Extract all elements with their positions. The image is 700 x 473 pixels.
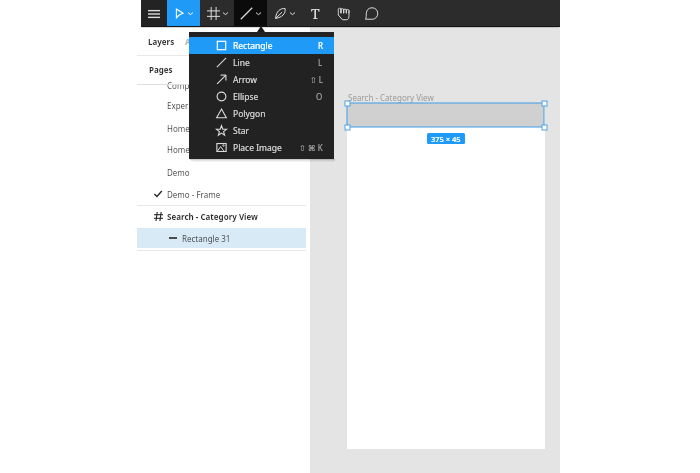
button[interactable]: Hand tool (329, 0, 357, 27)
button[interactable]: Frame tool (200, 0, 234, 27)
staticText: Home (167, 144, 190, 155)
staticText: Star (233, 125, 250, 137)
button[interactable]: Home (137, 118, 306, 138)
button[interactable]: Layers (137, 29, 186, 54)
button[interactable]: Place Image (189, 139, 334, 156)
staticText: Exper (167, 100, 189, 111)
staticText: Rectangle 31 (182, 233, 231, 244)
staticText: Layers (148, 36, 175, 47)
button[interactable]: Menu (141, 0, 167, 27)
button[interactable]: Search - Category View (137, 206, 306, 226)
staticText: Demo - Frame (167, 189, 221, 200)
staticText: Polygon (233, 108, 266, 120)
staticText: O (316, 91, 323, 102)
button[interactable]: Pages (137, 57, 184, 82)
button[interactable]: Move tool (167, 0, 200, 27)
button[interactable]: Polygon (189, 105, 334, 122)
staticText: Arrow (233, 74, 257, 86)
staticText: Demo (167, 167, 190, 178)
staticText: L (318, 57, 323, 68)
button[interactable]: Home (137, 139, 306, 159)
staticText: Search - Category View (167, 211, 258, 222)
staticText: 375 × 45 (431, 134, 461, 144)
button[interactable]: Rectangle (189, 37, 334, 54)
staticText: Comp (167, 80, 190, 91)
button[interactable]: Line (189, 54, 334, 71)
button[interactable]: Text tool (301, 0, 329, 27)
staticText: Line (233, 57, 250, 69)
button[interactable]: Star (189, 122, 334, 139)
staticText: T (311, 4, 320, 23)
staticText: Pages (149, 64, 173, 75)
staticText: Search - Category View (348, 92, 434, 103)
button[interactable]: Shape tool (234, 0, 267, 27)
staticText: ⇧ ⌘ K (299, 142, 323, 153)
staticText: Ellipse (233, 91, 259, 103)
button[interactable]: Comment tool (357, 0, 385, 27)
staticText: Rectangle (233, 40, 273, 52)
staticText: Home (167, 123, 190, 134)
button[interactable]: Assets (181, 29, 225, 54)
button[interactable]: Demo - Frame (137, 184, 306, 204)
button[interactable]: Exper (137, 95, 306, 115)
button[interactable]: Rectangle 31 (137, 228, 306, 248)
staticText: R (318, 40, 323, 51)
button[interactable]: Demo (137, 162, 306, 182)
button[interactable]: Pen tool (267, 0, 301, 27)
staticText: Assets (185, 36, 211, 47)
button[interactable]: Comp (137, 75, 306, 95)
button[interactable]: Arrow (189, 71, 334, 88)
button[interactable]: Ellipse (189, 88, 334, 105)
staticText: Place Image (233, 142, 282, 154)
staticText: ⇧ L (310, 74, 323, 85)
